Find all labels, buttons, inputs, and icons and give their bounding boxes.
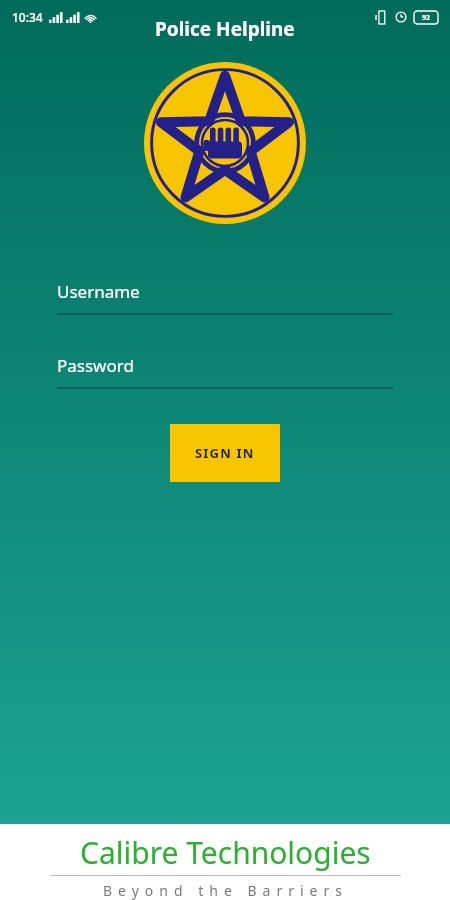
staticText: Beyond the Barriers bbox=[103, 881, 348, 900]
button[interactable]: Password bbox=[57, 354, 393, 389]
staticText: Calibre Technologies bbox=[80, 832, 371, 873]
staticText: Police Helpline bbox=[155, 16, 295, 42]
staticText: 10:34 bbox=[12, 9, 43, 25]
button[interactable]: Username bbox=[57, 280, 393, 315]
staticText: Password bbox=[57, 354, 134, 377]
button[interactable]: SIGN IN bbox=[170, 424, 280, 482]
other: Police Helpline logo bbox=[144, 62, 306, 224]
staticText: Username bbox=[57, 280, 140, 303]
staticText: 92 bbox=[422, 13, 431, 23]
staticText: SIGN IN bbox=[195, 444, 255, 462]
